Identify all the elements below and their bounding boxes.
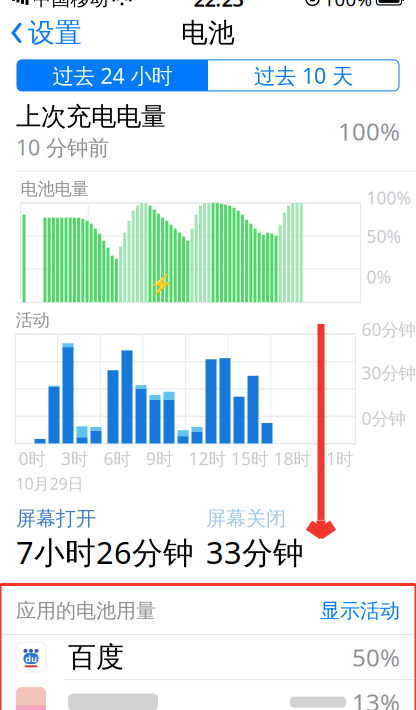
staticText: 上次充电电量 xyxy=(16,101,166,132)
staticText: 电池 xyxy=(181,16,235,49)
staticText: 0时 xyxy=(18,447,45,470)
button[interactable]: 过去 24 小时 xyxy=(17,60,208,91)
staticText: 22:23 xyxy=(193,0,243,12)
staticText: 应用的电池用量 xyxy=(16,598,156,623)
button[interactable]: 过去 10 天 xyxy=(208,60,399,91)
staticText: 0% xyxy=(366,265,390,288)
staticText: 屏幕关闭 xyxy=(206,506,286,531)
button[interactable]: 显示活动 xyxy=(312,594,400,627)
staticText: ⚡ xyxy=(148,273,173,296)
staticText: 30分钟 xyxy=(361,361,415,384)
staticText: 100% xyxy=(323,0,372,11)
staticText: 13% xyxy=(352,686,400,710)
staticText: 33分钟 xyxy=(206,532,304,572)
staticText: 7小时26分钟 xyxy=(16,532,194,572)
staticText: du xyxy=(25,652,37,665)
staticText: 60分钟 xyxy=(361,318,415,341)
staticText: 10 分钟前 xyxy=(16,133,109,161)
staticText: 50% xyxy=(352,641,400,673)
staticText: 10月29日 xyxy=(15,473,83,494)
staticText: 屏幕打开 xyxy=(16,506,96,531)
staticText: 显示活动 xyxy=(320,598,400,623)
staticText: 过去 10 天 xyxy=(254,61,353,90)
staticText: 电池电量 xyxy=(20,178,88,200)
staticText: 100% xyxy=(366,186,410,209)
staticText: 中国移动 xyxy=(32,0,108,10)
button[interactable]: du xyxy=(0,635,416,679)
staticText: 9时 xyxy=(146,447,173,470)
staticText: 12时 xyxy=(188,447,225,470)
staticText: 15时 xyxy=(231,447,268,470)
staticText: 设置 xyxy=(28,16,82,49)
staticText: 0分钟 xyxy=(361,407,405,430)
staticText: 100% xyxy=(338,115,400,147)
staticText: 百度 xyxy=(68,640,124,674)
staticText: 3时 xyxy=(61,447,88,470)
staticText: 6时 xyxy=(103,447,130,470)
button[interactable]: 13% xyxy=(0,680,416,710)
staticText: 18时 xyxy=(273,447,310,470)
button[interactable]: 设置 xyxy=(0,13,92,53)
staticText: 21时 xyxy=(316,447,353,470)
staticText: 50% xyxy=(366,225,400,248)
staticText: 过去 24 小时 xyxy=(52,61,172,90)
staticText: 活动 xyxy=(15,310,49,331)
